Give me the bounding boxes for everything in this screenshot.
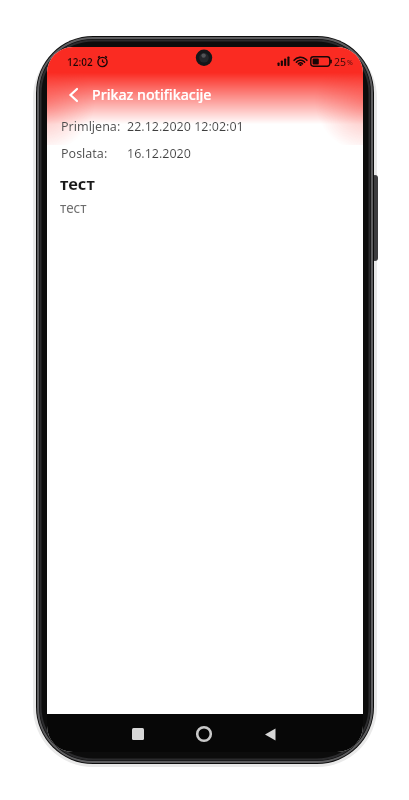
staticText: тест [60,172,95,194]
button[interactable] [126,722,150,746]
button[interactable] [258,722,282,746]
staticText: Poslata: [61,145,108,162]
staticText: 22.12.2020 12:02:01 [127,118,244,135]
staticText: тест [60,199,87,217]
staticText: 16.12.2020 [127,145,191,162]
button[interactable] [192,722,216,746]
staticText: Prikaz notifikacije [92,85,212,104]
button[interactable] [63,85,85,105]
staticText: 25 [334,55,347,69]
staticText: Primljena: [61,118,121,135]
staticText: % [347,58,353,68]
staticText: 12:02 [67,55,93,69]
